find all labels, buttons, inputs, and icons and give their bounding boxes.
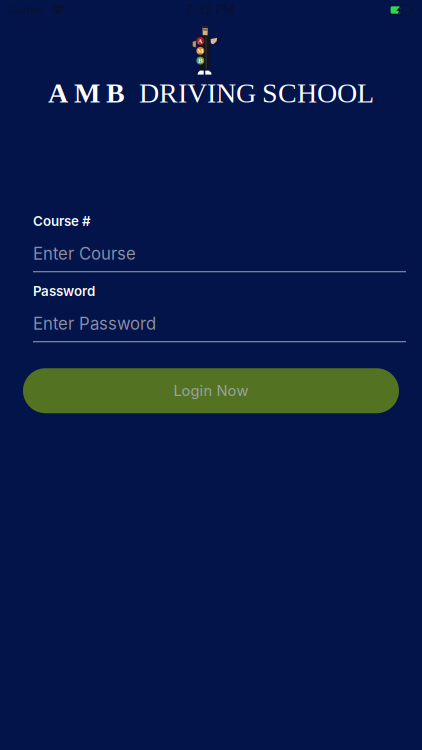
staticText: Enter Password	[33, 314, 156, 334]
staticText: M	[197, 47, 203, 54]
staticText: Enter Course	[33, 244, 136, 264]
staticText: Password	[33, 283, 95, 299]
staticText: Course #	[33, 213, 91, 229]
staticText: A	[198, 37, 203, 45]
staticText: Carrier	[9, 3, 45, 17]
staticText: 7:32 PM	[186, 2, 236, 18]
staticText: A M B DRIVING SCHOOL	[48, 78, 374, 108]
staticText: Login Now	[173, 382, 248, 400]
button[interactable]: Login Now	[23, 368, 399, 413]
staticText: B	[198, 57, 202, 64]
